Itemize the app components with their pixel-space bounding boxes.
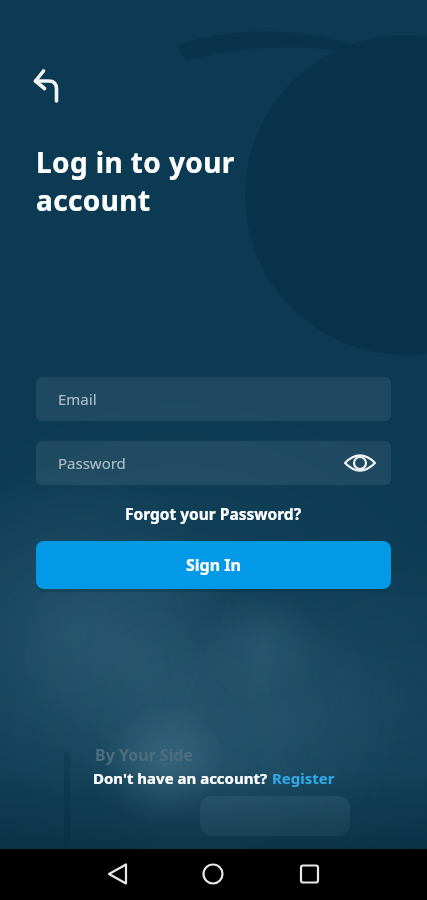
staticText: Register <box>272 768 335 788</box>
button[interactable]: Don't have an account? <box>93 768 335 788</box>
button[interactable] <box>0 849 143 900</box>
staticText: Log in to your <box>36 143 235 181</box>
button[interactable] <box>285 849 427 900</box>
button[interactable]: Password <box>36 441 391 485</box>
staticText: Email <box>58 389 97 409</box>
staticText: By Your Side <box>95 744 194 766</box>
button[interactable]: Email <box>36 377 391 421</box>
staticText: Password <box>58 453 126 473</box>
button[interactable] <box>143 849 285 900</box>
button[interactable]: Sign In <box>36 541 391 589</box>
staticText: Don't have an account? <box>93 768 272 788</box>
staticText: account <box>36 181 151 219</box>
button[interactable]: Forgot your Password? <box>125 503 302 524</box>
staticText: Sign In <box>186 554 241 576</box>
button[interactable] <box>343 446 377 480</box>
button[interactable] <box>28 62 68 102</box>
